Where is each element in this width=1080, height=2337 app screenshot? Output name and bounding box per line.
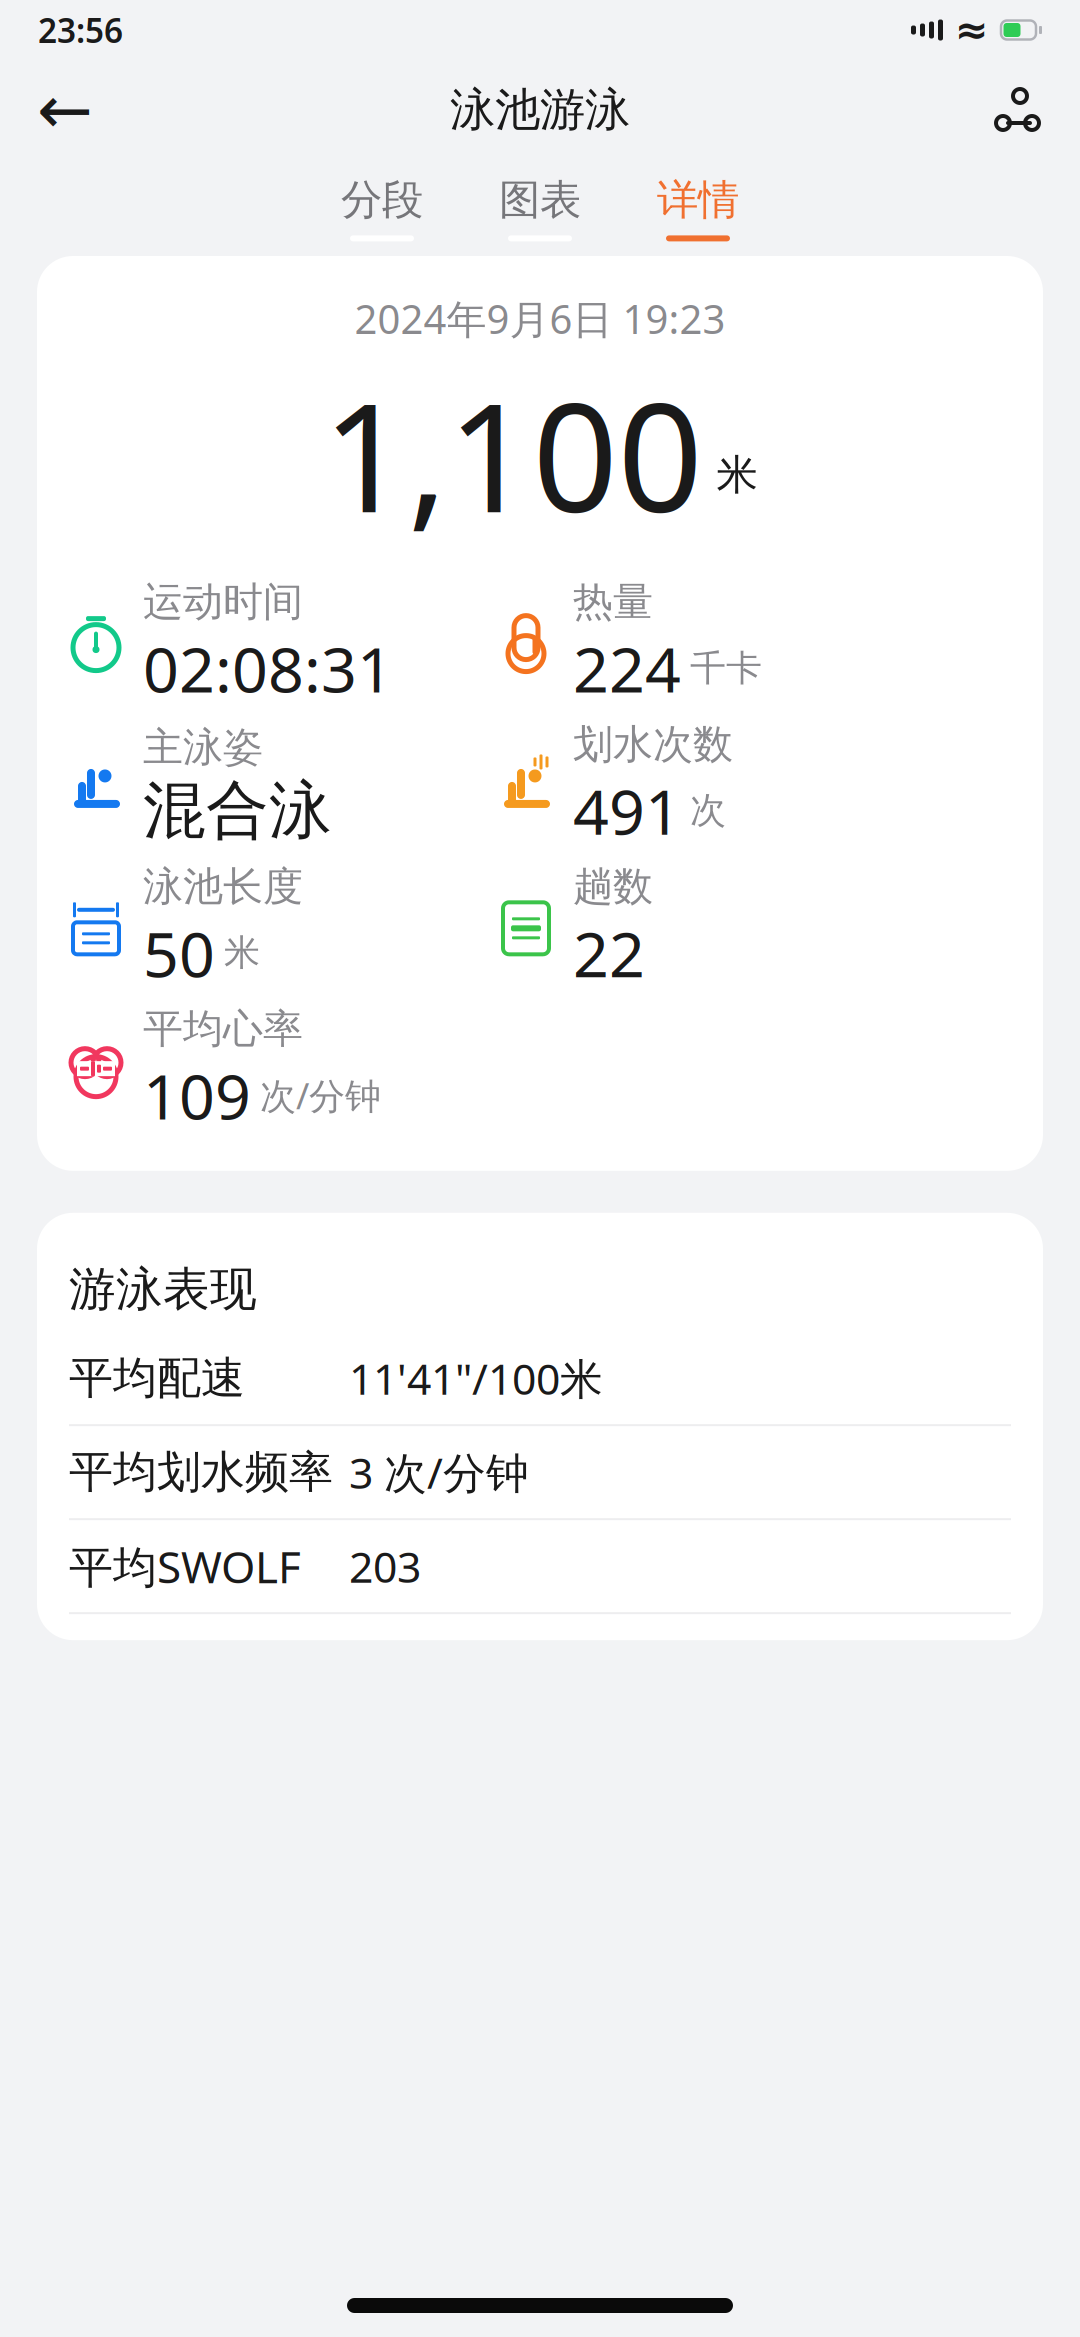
staticText: 平均划水频率	[69, 1445, 333, 1499]
staticText: 50	[143, 911, 215, 994]
staticText: 游泳表现	[69, 1261, 257, 1318]
staticText: 23:56	[38, 8, 123, 52]
staticText: 主泳姿	[143, 723, 263, 772]
button[interactable]: Back	[34, 79, 96, 141]
staticText: 平均配速	[69, 1351, 245, 1405]
staticText: 1,100	[322, 355, 702, 553]
staticText: 米	[716, 449, 757, 500]
staticText: 详情	[657, 175, 739, 225]
staticText: 米	[224, 931, 260, 975]
staticText: 分段	[341, 175, 423, 225]
staticText: 3 次/分钟	[349, 1444, 529, 1500]
staticText: 224	[573, 627, 681, 710]
staticText: 图表	[499, 175, 581, 225]
staticText: 2024年9月6日 19:23	[354, 292, 725, 345]
button[interactable]: Share	[984, 79, 1046, 141]
staticText: 热量	[573, 577, 653, 626]
staticText: 平均心率	[143, 1004, 303, 1054]
staticText: 划水次数	[573, 720, 733, 769]
staticText: 泳池长度	[143, 862, 303, 911]
staticText: 22	[573, 911, 645, 994]
button[interactable]: 图表	[483, 175, 597, 241]
staticText: 运动时间	[143, 577, 303, 626]
staticText: 混合泳	[143, 772, 332, 849]
staticText: 11'41"/100米	[349, 1350, 603, 1406]
staticText: 491	[573, 769, 681, 852]
staticText: ←	[37, 72, 93, 148]
staticText: 次/分钟	[260, 1071, 381, 1119]
button[interactable]: 分段	[325, 175, 439, 241]
staticText: 02:08:31	[143, 627, 393, 710]
staticText: 203	[349, 1538, 421, 1594]
button[interactable]: 详情	[641, 175, 755, 241]
staticText: 109	[143, 1054, 251, 1137]
staticText: 平均SWOLF	[69, 1537, 301, 1595]
staticText: 泳池游泳	[450, 82, 630, 138]
staticText: ≈	[955, 7, 989, 53]
staticText: 次	[690, 788, 726, 833]
staticText: 千卡	[690, 646, 762, 690]
staticText: 趟数	[573, 862, 653, 911]
